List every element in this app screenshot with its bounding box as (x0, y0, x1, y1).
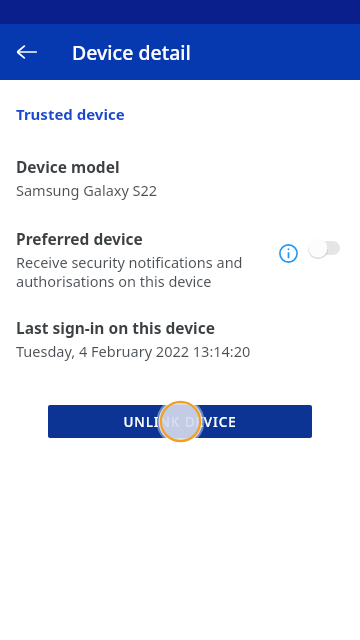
staticText: Tuesday, 4 February 2022 13:14:20 (16, 341, 251, 361)
staticText: Last sign-in on this device (16, 317, 215, 338)
button[interactable]: Back (3, 28, 51, 76)
staticText: Receive security notifications and autho… (16, 252, 243, 291)
button[interactable]: More information (274, 239, 302, 267)
staticText: Device detail (72, 39, 191, 66)
staticText: Device model (16, 156, 120, 177)
button[interactable]: UNLINK DEVICE (48, 405, 312, 438)
staticText: Samsung Galaxy S22 (16, 180, 158, 200)
staticText: Preferred device (16, 228, 143, 249)
button[interactable]: Preferred device toggle, off (306, 235, 344, 261)
staticText: UNLINK DEVICE (123, 413, 237, 431)
button[interactable]: Trusted device (16, 104, 125, 124)
